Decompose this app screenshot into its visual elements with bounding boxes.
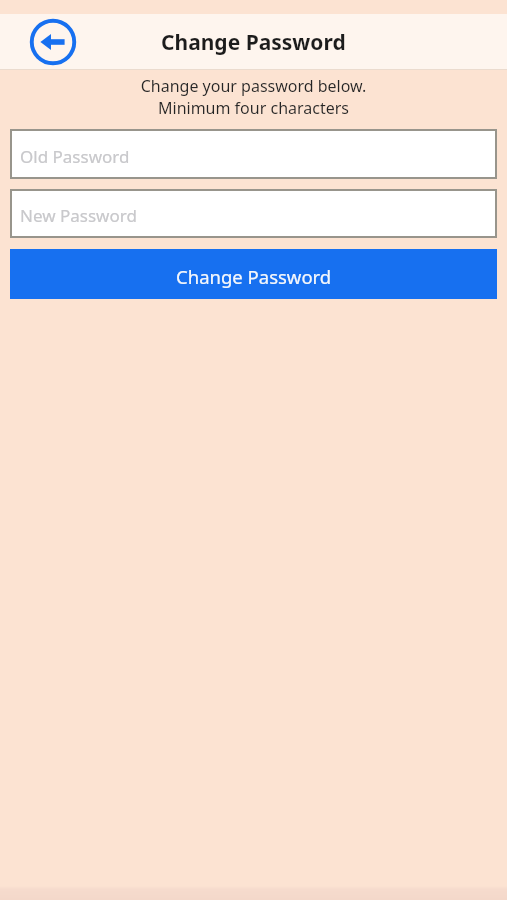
staticText: Change your password below. Minimum four… — [0, 75, 507, 119]
staticText: Change Password — [176, 264, 332, 289]
staticText: New Password — [20, 204, 137, 227]
staticText: Change Password — [161, 28, 346, 57]
button[interactable]: New Password — [10, 189, 497, 238]
staticText: Old Password — [20, 145, 130, 168]
button[interactable]: Back — [29, 18, 77, 66]
button[interactable]: Change Password — [10, 249, 497, 299]
button[interactable]: Old Password — [10, 129, 497, 179]
